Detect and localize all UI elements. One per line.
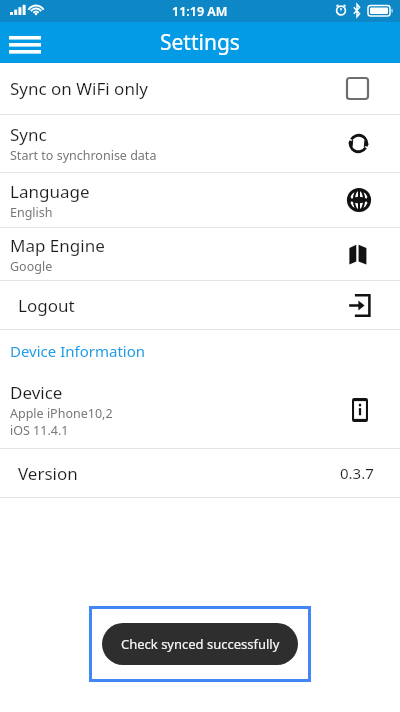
staticText: Sync on WiFi only: [10, 77, 347, 100]
button[interactable]: Version: [0, 449, 400, 497]
button[interactable]: Map Engine: [0, 228, 400, 280]
other: Device information: [352, 398, 368, 422]
staticText: Language: [10, 180, 90, 203]
button[interactable]: Logout: [0, 281, 400, 329]
staticText: Logout: [18, 294, 348, 317]
button[interactable]: Open navigation menu: [8, 28, 42, 58]
staticText: Map Engine: [10, 234, 105, 257]
button[interactable]: Language: [0, 173, 400, 227]
button[interactable]: Device: [0, 372, 400, 448]
other: Map engine: [348, 243, 371, 266]
other: Logout: [348, 294, 371, 317]
button[interactable]: Check synced successfully: [89, 606, 311, 682]
other: Language: [347, 188, 371, 212]
staticText: English: [10, 204, 53, 221]
staticText: Version: [18, 462, 340, 485]
staticText: 11:19 AM: [172, 3, 228, 20]
staticText: 0.3.7: [340, 463, 374, 483]
staticText: Check synced successfully: [121, 635, 280, 653]
other: Sync: [346, 131, 371, 156]
staticText: Device Information: [10, 341, 146, 361]
staticText: Google: [10, 258, 53, 275]
button[interactable]: Sync on WiFi only: [0, 63, 400, 114]
staticText: iOS 11.4.1: [10, 422, 69, 439]
button[interactable]: Sync: [0, 115, 400, 172]
staticText: Apple iPhone10,2: [10, 405, 113, 422]
staticText: Sync: [10, 123, 47, 146]
staticText: Start to synchronise data: [10, 147, 157, 164]
staticText: Device: [10, 381, 63, 404]
staticText: Settings: [160, 28, 240, 57]
